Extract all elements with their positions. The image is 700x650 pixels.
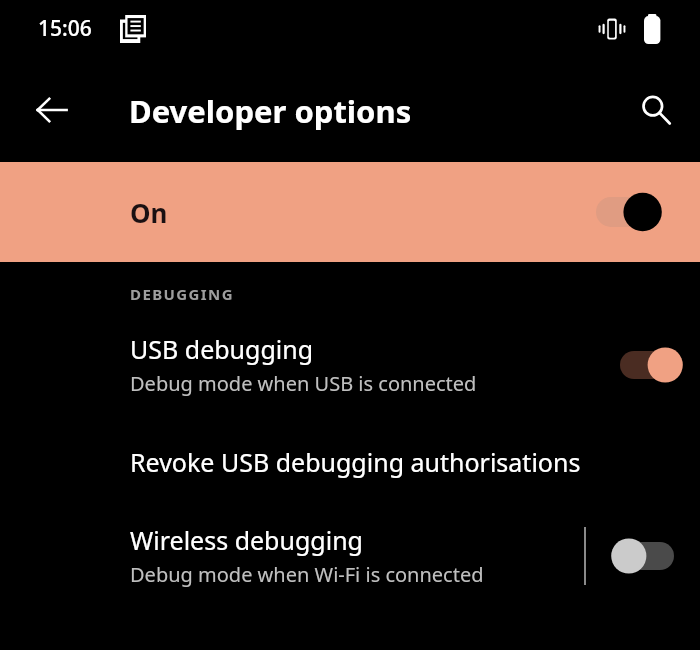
staticText: Debug mode when USB is connected — [130, 370, 477, 397]
button[interactable]: Revoke USB debugging authorisations — [0, 445, 700, 479]
button[interactable]: On — [0, 162, 700, 262]
staticText: USB debugging — [130, 332, 314, 366]
button[interactable]: Wireless debugging — [0, 523, 700, 588]
staticText: DEBUGGING — [130, 284, 234, 304]
staticText: Debug mode when Wi-Fi is connected — [130, 561, 484, 588]
staticText: Developer options — [129, 90, 412, 132]
staticText: Wireless debugging — [130, 523, 363, 557]
button[interactable]: Search — [626, 80, 686, 140]
button[interactable]: USB debugging — [0, 332, 700, 397]
button[interactable] — [586, 536, 700, 576]
staticText: Revoke USB debugging authorisations — [130, 445, 581, 479]
staticText: 15:06 — [38, 14, 92, 43]
button[interactable]: Back — [22, 80, 82, 140]
staticText: On — [130, 195, 168, 230]
